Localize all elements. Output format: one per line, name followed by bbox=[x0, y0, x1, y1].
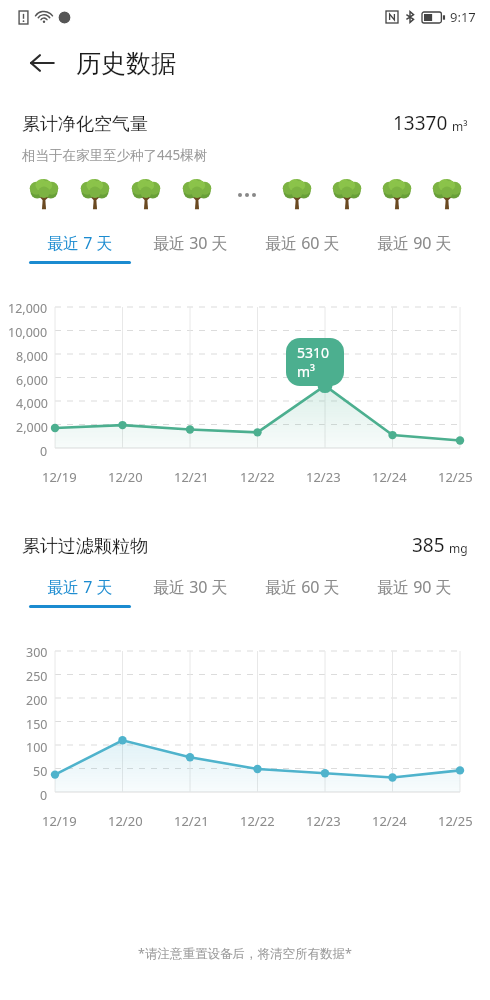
staticText: 最近 90 天 bbox=[377, 576, 452, 598]
button[interactable]: 最近 7 天 bbox=[24, 576, 135, 608]
staticText: 300 bbox=[26, 644, 48, 661]
staticText: 最近 60 天 bbox=[265, 576, 340, 598]
staticText: 2,000 bbox=[16, 419, 48, 436]
staticText: 最近 7 天 bbox=[47, 232, 113, 254]
staticText: 4,000 bbox=[16, 395, 48, 412]
staticText: 12/20 bbox=[108, 468, 143, 486]
button[interactable]: 最近 90 天 bbox=[358, 232, 470, 264]
button[interactable]: 最近 90 天 bbox=[358, 576, 470, 608]
staticText: 6,000 bbox=[16, 372, 48, 389]
staticText: 8,000 bbox=[16, 348, 48, 365]
staticText: 最近 30 天 bbox=[153, 576, 228, 598]
staticText: 12,000 bbox=[8, 300, 48, 317]
staticText: 10,000 bbox=[8, 324, 48, 341]
staticText: 最近 7 天 bbox=[47, 576, 113, 598]
button[interactable]: 最近 60 天 bbox=[246, 576, 358, 608]
staticText: 最近 90 天 bbox=[377, 232, 452, 254]
button[interactable]: 返回 bbox=[22, 43, 62, 83]
button[interactable]: 最近 30 天 bbox=[135, 576, 246, 608]
button[interactable]: 最近 7 天 bbox=[24, 232, 135, 264]
staticText: 12/22 bbox=[240, 468, 275, 486]
staticText: 历史数据 bbox=[76, 48, 176, 79]
staticText: 12/24 bbox=[372, 812, 407, 830]
staticText: 0 bbox=[40, 443, 48, 460]
staticText: 12/19 bbox=[42, 468, 77, 486]
staticText: 12/21 bbox=[174, 468, 209, 486]
button[interactable]: 最近 60 天 bbox=[246, 232, 358, 264]
staticText: 13370 bbox=[393, 110, 448, 136]
staticText: 12/23 bbox=[306, 812, 341, 830]
staticText: 12/25 bbox=[438, 468, 473, 486]
staticText: 最近 60 天 bbox=[265, 232, 340, 254]
staticText: 100 bbox=[26, 739, 48, 756]
staticText: 12/22 bbox=[240, 812, 275, 830]
staticText: 250 bbox=[26, 668, 48, 685]
staticText: 50 bbox=[33, 763, 48, 780]
staticText: 12/20 bbox=[108, 812, 143, 830]
staticText: *请注意重置设备后，将清空所有数据* bbox=[0, 945, 490, 962]
staticText: mg bbox=[449, 540, 468, 556]
staticText: 累计净化空气量 bbox=[22, 113, 148, 136]
staticText: 相当于在家里至少种了445棵树 bbox=[22, 146, 208, 164]
staticText: 12/23 bbox=[306, 468, 341, 486]
staticText: 0 bbox=[40, 787, 48, 804]
staticText: 最近 30 天 bbox=[153, 232, 228, 254]
staticText: m³ bbox=[452, 118, 468, 134]
button[interactable]: 最近 30 天 bbox=[135, 232, 246, 264]
staticText: 12/24 bbox=[372, 468, 407, 486]
staticText: 12/25 bbox=[438, 812, 473, 830]
staticText: 385 bbox=[412, 532, 445, 558]
staticText: 200 bbox=[26, 692, 48, 709]
staticText: 5310m³ bbox=[297, 343, 333, 381]
staticText: 150 bbox=[26, 716, 48, 733]
staticText: 12/19 bbox=[42, 812, 77, 830]
staticText: 12/21 bbox=[174, 812, 209, 830]
staticText: 9:17 bbox=[450, 8, 476, 26]
staticText: 累计过滤颗粒物 bbox=[22, 535, 148, 558]
